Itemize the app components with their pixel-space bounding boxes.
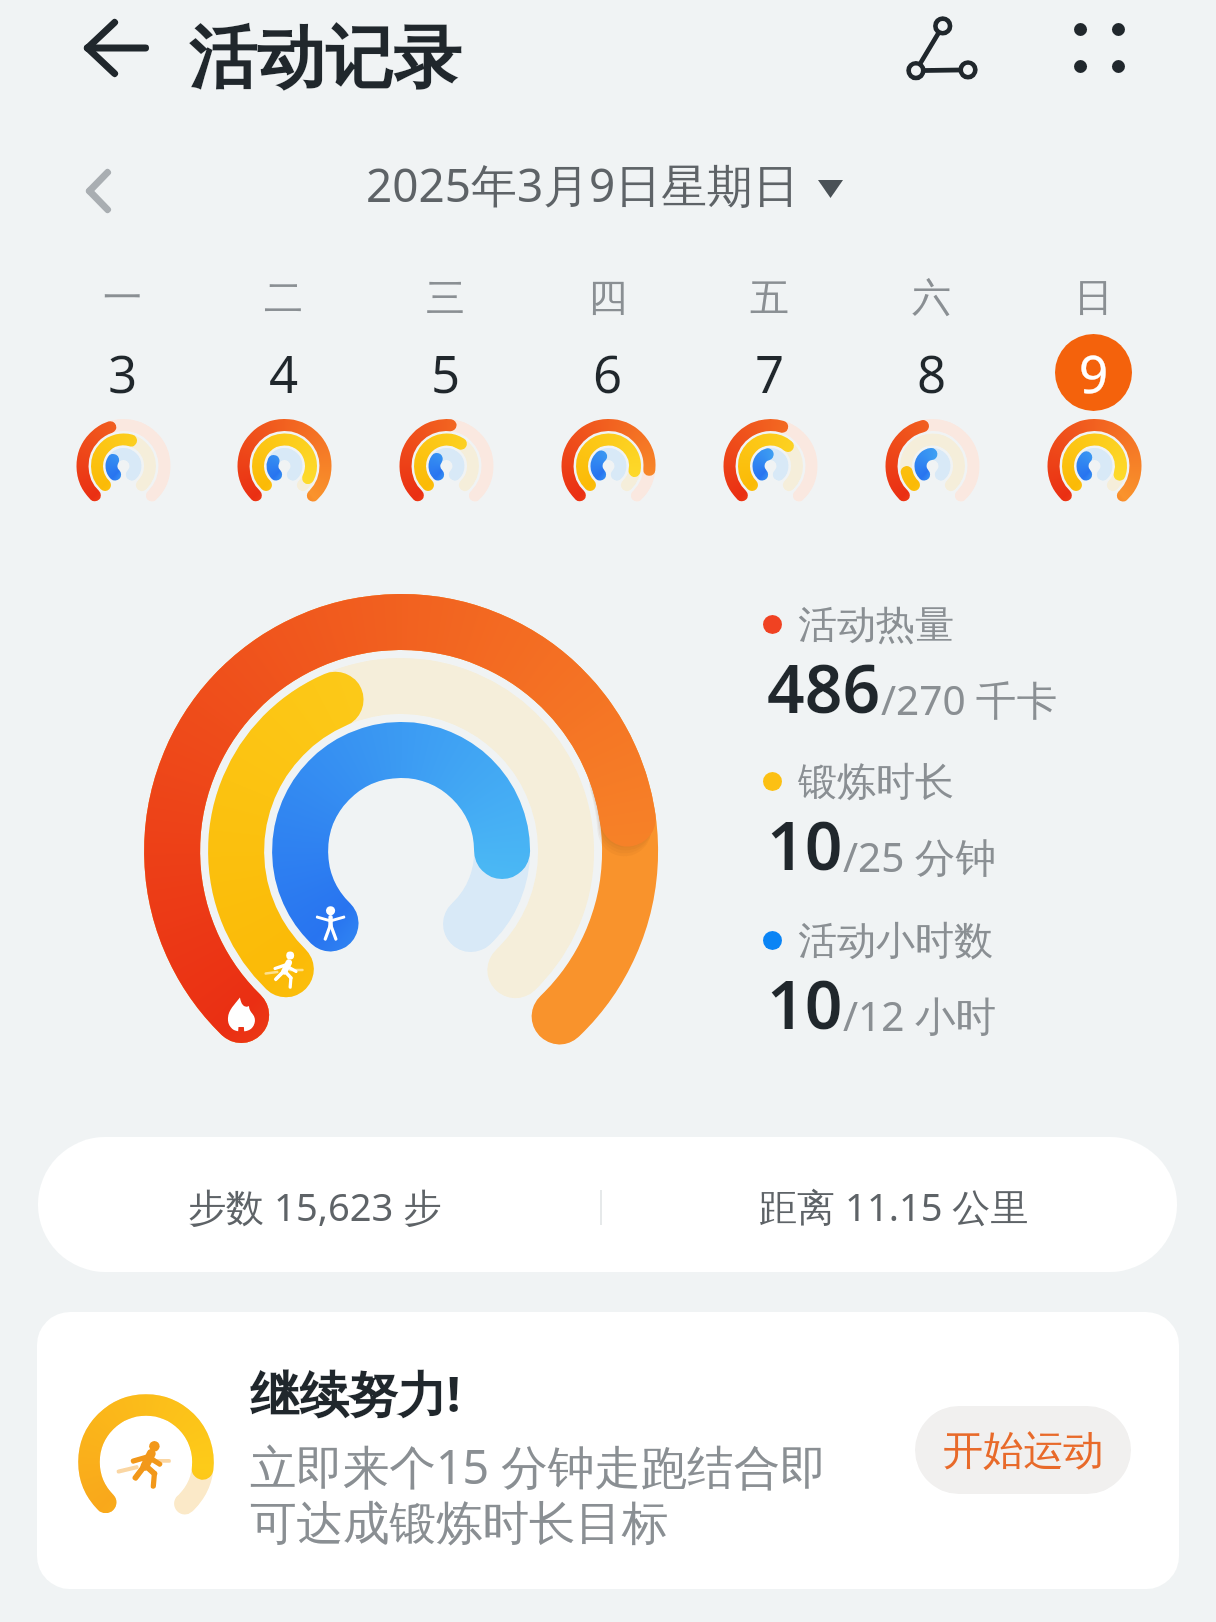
staticText: /270 千卡 [881,672,1058,727]
button[interactable]: 继续努力! [37,1312,1179,1589]
button[interactable]: Share [896,3,986,93]
button[interactable]: 步数 15,623 步 [38,1137,1177,1272]
staticText: 10 [767,799,843,889]
staticText: 486 [767,642,881,732]
button[interactable]: 开始运动 [915,1406,1131,1494]
staticText: 继续努力! [250,1359,461,1426]
button[interactable]: More options [1054,3,1144,93]
staticText: 活动热量 [798,600,954,649]
staticText: 锻炼时长 [798,757,954,806]
staticText: 7 [755,338,785,407]
button[interactable]: 五 [688,269,850,510]
staticText: 10 [767,958,843,1048]
button[interactable]: 六 [850,269,1012,510]
staticText: 9 [1079,338,1109,407]
staticText: 4 [269,338,299,407]
staticText: 二 [264,273,303,322]
staticText: /12 小时 [843,988,996,1043]
button[interactable]: Previous day [58,150,139,231]
staticText: 四 [588,273,627,322]
staticText: 3 [108,338,138,407]
staticText: 日 [1074,273,1113,322]
staticText: 活动记录 [189,15,462,101]
staticText: 立即来个15 分钟走跑结合即 可达成锻炼时长目标 [250,1434,827,1553]
staticText: 六 [912,273,951,322]
staticText: 6 [593,338,623,407]
staticText: 一 [103,273,142,322]
staticText: 活动小时数 [798,916,993,965]
staticText: /25 分钟 [843,829,996,884]
staticText: 五 [750,273,789,322]
staticText: 距离 11.15 公里 [759,1180,1029,1232]
button[interactable]: Back [73,4,160,91]
staticText: 开始运动 [943,1425,1104,1476]
staticText: 5 [431,338,461,407]
button[interactable]: 二 [203,269,364,510]
staticText: 三 [426,273,465,322]
staticText: 2025年3月9日星期日 [366,153,799,216]
button[interactable]: 三 [364,269,526,510]
button[interactable]: 日 [1012,269,1174,510]
button[interactable]: 四 [526,269,688,510]
staticText: 8 [917,338,947,407]
staticText: 步数 15,623 步 [188,1180,442,1232]
button[interactable]: 一 [42,269,203,510]
